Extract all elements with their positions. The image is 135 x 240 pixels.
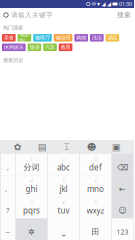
button[interactable]: 7	[16, 197, 47, 218]
staticText: 购物	[76, 34, 86, 41]
button[interactable]	[16, 218, 47, 240]
staticText: pqrs	[23, 205, 40, 216]
button[interactable]: 汽车	[43, 44, 57, 51]
button[interactable]	[1, 197, 15, 218]
staticText: 洗浴	[92, 34, 102, 41]
staticText: jkl	[59, 184, 67, 194]
button[interactable]: 8	[48, 197, 79, 218]
button[interactable]: Clipboard	[109, 140, 123, 154]
staticText: 休闲娱乐	[4, 44, 24, 51]
staticText: ▼	[97, 2, 100, 6]
button[interactable]	[112, 154, 133, 175]
button[interactable]	[1, 218, 15, 240]
button[interactable]: 4	[16, 175, 47, 197]
button[interactable]	[112, 175, 133, 197]
staticText: ✲	[28, 227, 35, 236]
button[interactable]: 6	[80, 175, 111, 197]
staticText: 请输入关键字	[11, 11, 53, 19]
button[interactable]: Text cursor	[60, 140, 74, 154]
staticText: 电影院	[19, 31, 29, 44]
button[interactable]: 2	[48, 154, 79, 175]
staticText: 9	[94, 200, 96, 205]
staticText: 健身房	[56, 34, 71, 41]
button[interactable]: 酒店	[106, 34, 119, 42]
button[interactable]: 咖啡厅	[33, 34, 52, 42]
button[interactable]: 购物	[74, 34, 88, 42]
staticText: ←	[119, 184, 126, 193]
button[interactable]: 5	[48, 175, 79, 197]
staticText: 7	[30, 200, 32, 205]
button[interactable]: 美食	[2, 34, 16, 42]
staticText: 搜索	[117, 11, 131, 19]
staticText: 分词	[23, 162, 39, 172]
staticText: 2	[62, 157, 64, 162]
staticText: ☻	[87, 142, 97, 152]
staticText: ✿	[14, 142, 22, 152]
button[interactable]: 3	[80, 154, 111, 175]
staticText: 123	[116, 227, 128, 236]
staticText: 汽车	[45, 44, 55, 51]
staticText: ，	[4, 163, 11, 171]
staticText: ⎵	[62, 228, 65, 236]
staticText: wxyz	[86, 205, 104, 216]
staticText: ◢	[107, 1, 111, 7]
staticText: 咖啡厅	[35, 34, 50, 41]
staticText: ✉	[91, 1, 95, 7]
button[interactable]: 搜索	[114, 8, 134, 22]
staticText: def	[89, 162, 102, 173]
button[interactable]	[1, 175, 15, 197]
staticText: ～	[4, 228, 11, 236]
button[interactable]: 9	[80, 197, 111, 218]
button[interactable]: 1	[16, 154, 47, 175]
button[interactable]: 电影院	[18, 34, 31, 42]
staticText: ？	[4, 206, 11, 214]
staticText: 田	[91, 227, 99, 237]
staticText: 美食	[4, 34, 14, 41]
staticText: 。	[4, 185, 11, 193]
staticText: 6	[94, 178, 96, 184]
staticText: 教育	[61, 44, 71, 51]
button[interactable]: 健身房	[54, 34, 72, 42]
staticText: ⌶	[64, 142, 70, 151]
button[interactable]: Settings	[11, 140, 25, 154]
staticText: 5	[62, 178, 64, 184]
staticText: ▣	[112, 142, 121, 152]
staticText: 1	[30, 157, 32, 162]
staticText: ◢	[101, 1, 105, 7]
button[interactable]	[112, 218, 133, 240]
staticText: 酒店	[107, 34, 117, 41]
staticText: 8	[62, 200, 64, 205]
button[interactable]: 旅游	[28, 44, 41, 51]
staticText: 4	[30, 178, 32, 184]
button[interactable]: Emoji	[85, 140, 99, 154]
button[interactable]: 休闲娱乐	[2, 44, 26, 51]
staticText: tuv	[57, 205, 69, 216]
staticText: 旅游	[29, 44, 39, 51]
button[interactable]: 教育	[59, 44, 72, 51]
staticText: abc	[57, 162, 70, 173]
staticText: ☺	[118, 206, 126, 215]
button[interactable]: Keyboard	[35, 140, 49, 154]
button[interactable]	[1, 154, 15, 175]
staticText: 搜索历史	[3, 57, 23, 64]
staticText: 01:30	[119, 0, 132, 8]
staticText: ⌫	[117, 163, 128, 172]
staticText: ghi	[25, 184, 37, 194]
staticText: mno	[87, 184, 104, 194]
button[interactable]: 洗浴	[90, 34, 104, 42]
button[interactable]	[48, 218, 79, 240]
staticText: 3	[94, 157, 96, 162]
staticText: ▤	[38, 142, 47, 152]
button[interactable]	[112, 197, 133, 218]
button[interactable]	[80, 218, 111, 240]
staticText: 热门搜索	[3, 24, 23, 31]
